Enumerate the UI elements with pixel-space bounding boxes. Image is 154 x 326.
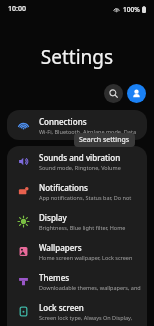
button[interactable]: Notifications [7,176,147,206]
staticText: 10:00 [8,4,26,14]
button[interactable]: Connections [7,110,147,140]
staticText: Wallpapers [39,242,82,253]
staticText: Screen lock type, Always On Display, and… [39,314,141,321]
staticText: Sound mode, Ringtone, Volume [39,164,121,171]
staticText: App notifications, Status bar, Do not di… [39,194,141,201]
button[interactable]: Themes [7,266,147,296]
staticText: Display [39,212,67,223]
button[interactable]: Wallpapers [7,236,147,266]
button[interactable]: Search settings [104,84,123,103]
button[interactable]: Display [7,206,147,236]
button[interactable]: Lock screen [7,296,147,326]
staticText: Themes [39,272,70,283]
staticText: Search settings [79,135,130,145]
staticText: Connections [39,116,87,127]
staticText: Sounds and vibration [39,152,121,163]
staticText: Home screen wallpaper, Lock screen wallp… [39,254,141,261]
button[interactable]: Sounds and vibration [7,146,147,176]
button[interactable]: Account [127,84,146,103]
staticText: Wi-Fi, Bluetooth, Airplane mode, Data us… [39,128,141,135]
staticText: 100% [123,5,140,14]
staticText: Notifications [39,182,88,193]
staticText: Settings [0,44,154,70]
staticText: Downloadable themes, wallpapers, and ico… [39,284,141,291]
staticText: Lock screen [39,302,84,313]
staticText: Brightness, Blue light filter, Home scre… [39,224,141,231]
